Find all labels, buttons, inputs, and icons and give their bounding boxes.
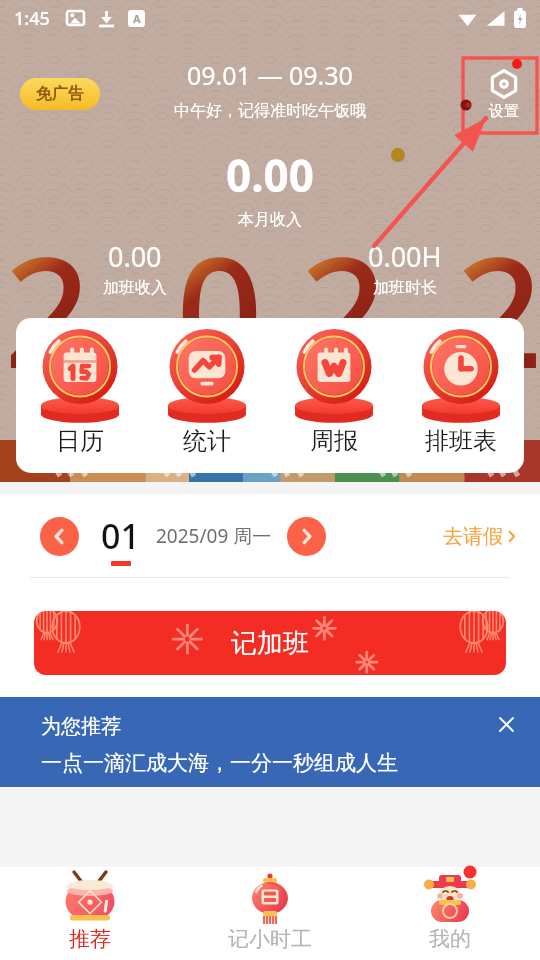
button[interactable]: 为您推荐	[0, 697, 540, 787]
button[interactable]: 设置	[488, 68, 520, 121]
staticText: 加班时长	[373, 278, 437, 298]
staticText: 推荐	[69, 926, 111, 952]
staticText: 统计	[183, 426, 231, 456]
button[interactable]: 下一天	[287, 517, 326, 556]
button[interactable]: 统计	[149, 327, 264, 456]
staticText: 去请假	[443, 524, 503, 549]
button[interactable]: 日历	[22, 327, 137, 456]
button[interactable]: 关闭	[494, 712, 518, 736]
staticText: 2	[300, 206, 387, 386]
staticText: 免广告	[36, 84, 84, 104]
staticText: 周报	[310, 426, 358, 456]
button[interactable]: 上一天	[40, 517, 79, 556]
staticText: 一点一滴汇成大海，一分一秒组成人生	[41, 750, 398, 776]
button[interactable]: 推荐	[0, 867, 180, 960]
staticText: 2	[4, 206, 91, 386]
staticText: 记加班	[231, 627, 309, 660]
staticText: 设置	[489, 102, 519, 121]
staticText: 2025/09 周一	[156, 523, 272, 549]
button[interactable]: 排班表	[403, 327, 518, 456]
button[interactable]: 免广告	[20, 78, 100, 110]
staticText: 0	[176, 206, 263, 386]
staticText: A	[133, 11, 141, 26]
staticText: 本月收入	[238, 210, 302, 230]
button[interactable]: 记小时工	[180, 867, 360, 960]
staticText: 0.00H	[368, 238, 442, 275]
staticText: 1:45	[14, 6, 50, 31]
staticText: 为您推荐	[41, 714, 121, 739]
button[interactable]: 周报	[276, 327, 391, 456]
button[interactable]: 我的	[360, 867, 540, 960]
staticText: 我的	[429, 926, 471, 952]
staticText: 01	[101, 513, 140, 559]
button[interactable]: 记加班	[34, 611, 506, 675]
staticText: 记小时工	[228, 926, 312, 952]
staticText: 加班收入	[103, 278, 167, 298]
staticText: 2	[456, 206, 540, 386]
button[interactable]: 去请假	[443, 524, 518, 549]
staticText: 0.00	[226, 145, 314, 205]
staticText: 日历	[56, 426, 104, 456]
staticText: 中午好，记得准时吃午饭哦	[174, 101, 366, 121]
staticText: 0.00	[108, 238, 162, 275]
staticText: 09.01 — 09.30	[187, 58, 353, 92]
staticText: 排班表	[425, 426, 497, 456]
